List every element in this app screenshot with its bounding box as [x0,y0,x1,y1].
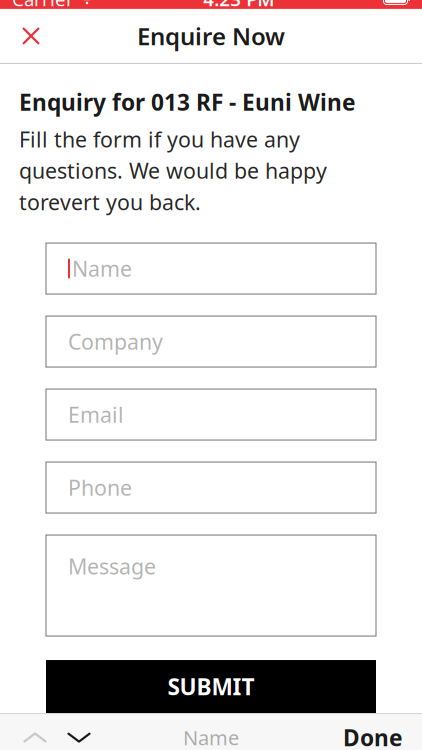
button[interactable]: Company [46,316,376,367]
staticText: Name [183,724,239,750]
staticText: Company [68,327,163,356]
button[interactable]: SUBMIT [46,660,376,713]
staticText: Name [72,254,132,283]
staticText: Fill the form if you have any questions.… [19,125,327,216]
staticText: 4:23 PM [203,0,274,11]
button[interactable]: Name [46,243,376,294]
staticText: Enquiry for 013 RF - Euni Wine [19,87,356,117]
staticText: SUBMIT [167,671,254,702]
staticText: Message [68,552,156,580]
staticText: Email [68,400,124,429]
button[interactable]: Close [9,14,53,58]
button[interactable]: Message [46,535,376,636]
button[interactable]: Done [337,715,409,750]
staticText: Phone [68,473,132,502]
staticText: Done [343,722,403,750]
staticText: Carrier [12,0,74,11]
button[interactable]: Next field [57,715,101,750]
button[interactable]: Email [46,389,376,440]
staticText: Enquire Now [137,20,285,52]
button[interactable]: Previous field [13,715,57,750]
button[interactable]: Phone [46,462,376,513]
